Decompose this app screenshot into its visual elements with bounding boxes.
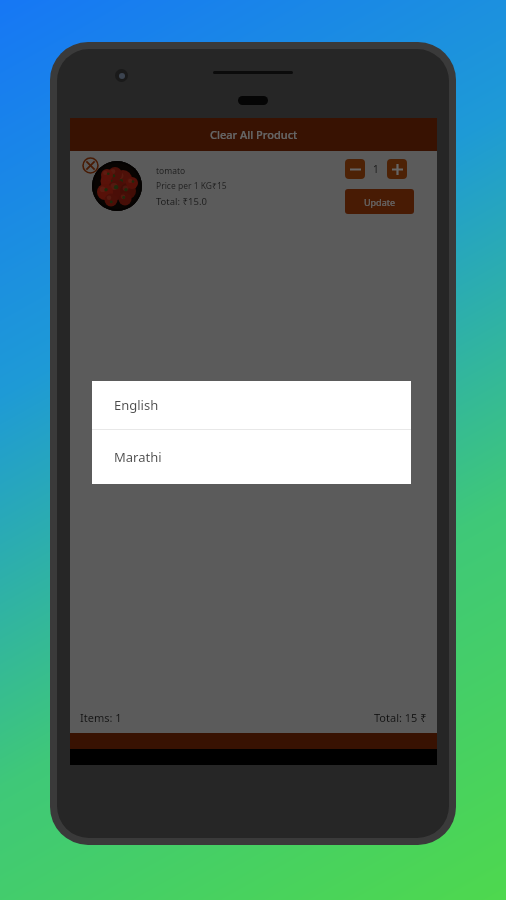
- button[interactable]: Increase quantity: [387, 159, 407, 179]
- button[interactable]: Marathi: [92, 430, 411, 484]
- button[interactable]: English: [92, 381, 411, 429]
- staticText: Total: 15 ₹: [374, 710, 427, 725]
- button[interactable]: Update: [345, 189, 414, 214]
- staticText: Marathi: [114, 448, 162, 466]
- button[interactable]: Decrease quantity: [345, 159, 365, 179]
- staticText: Price per 1 KG₹15: [156, 180, 227, 192]
- staticText: Update: [364, 196, 396, 208]
- staticText: Total: ₹15.0: [156, 195, 207, 208]
- staticText: tomato: [156, 165, 186, 177]
- staticText: Items: 1: [80, 710, 122, 725]
- staticText: English: [114, 396, 159, 414]
- staticText: 1: [373, 162, 379, 176]
- staticText: Clear All Product: [210, 127, 298, 142]
- button[interactable]: Remove item: [82, 157, 99, 174]
- button[interactable]: Clear All Product: [70, 118, 437, 151]
